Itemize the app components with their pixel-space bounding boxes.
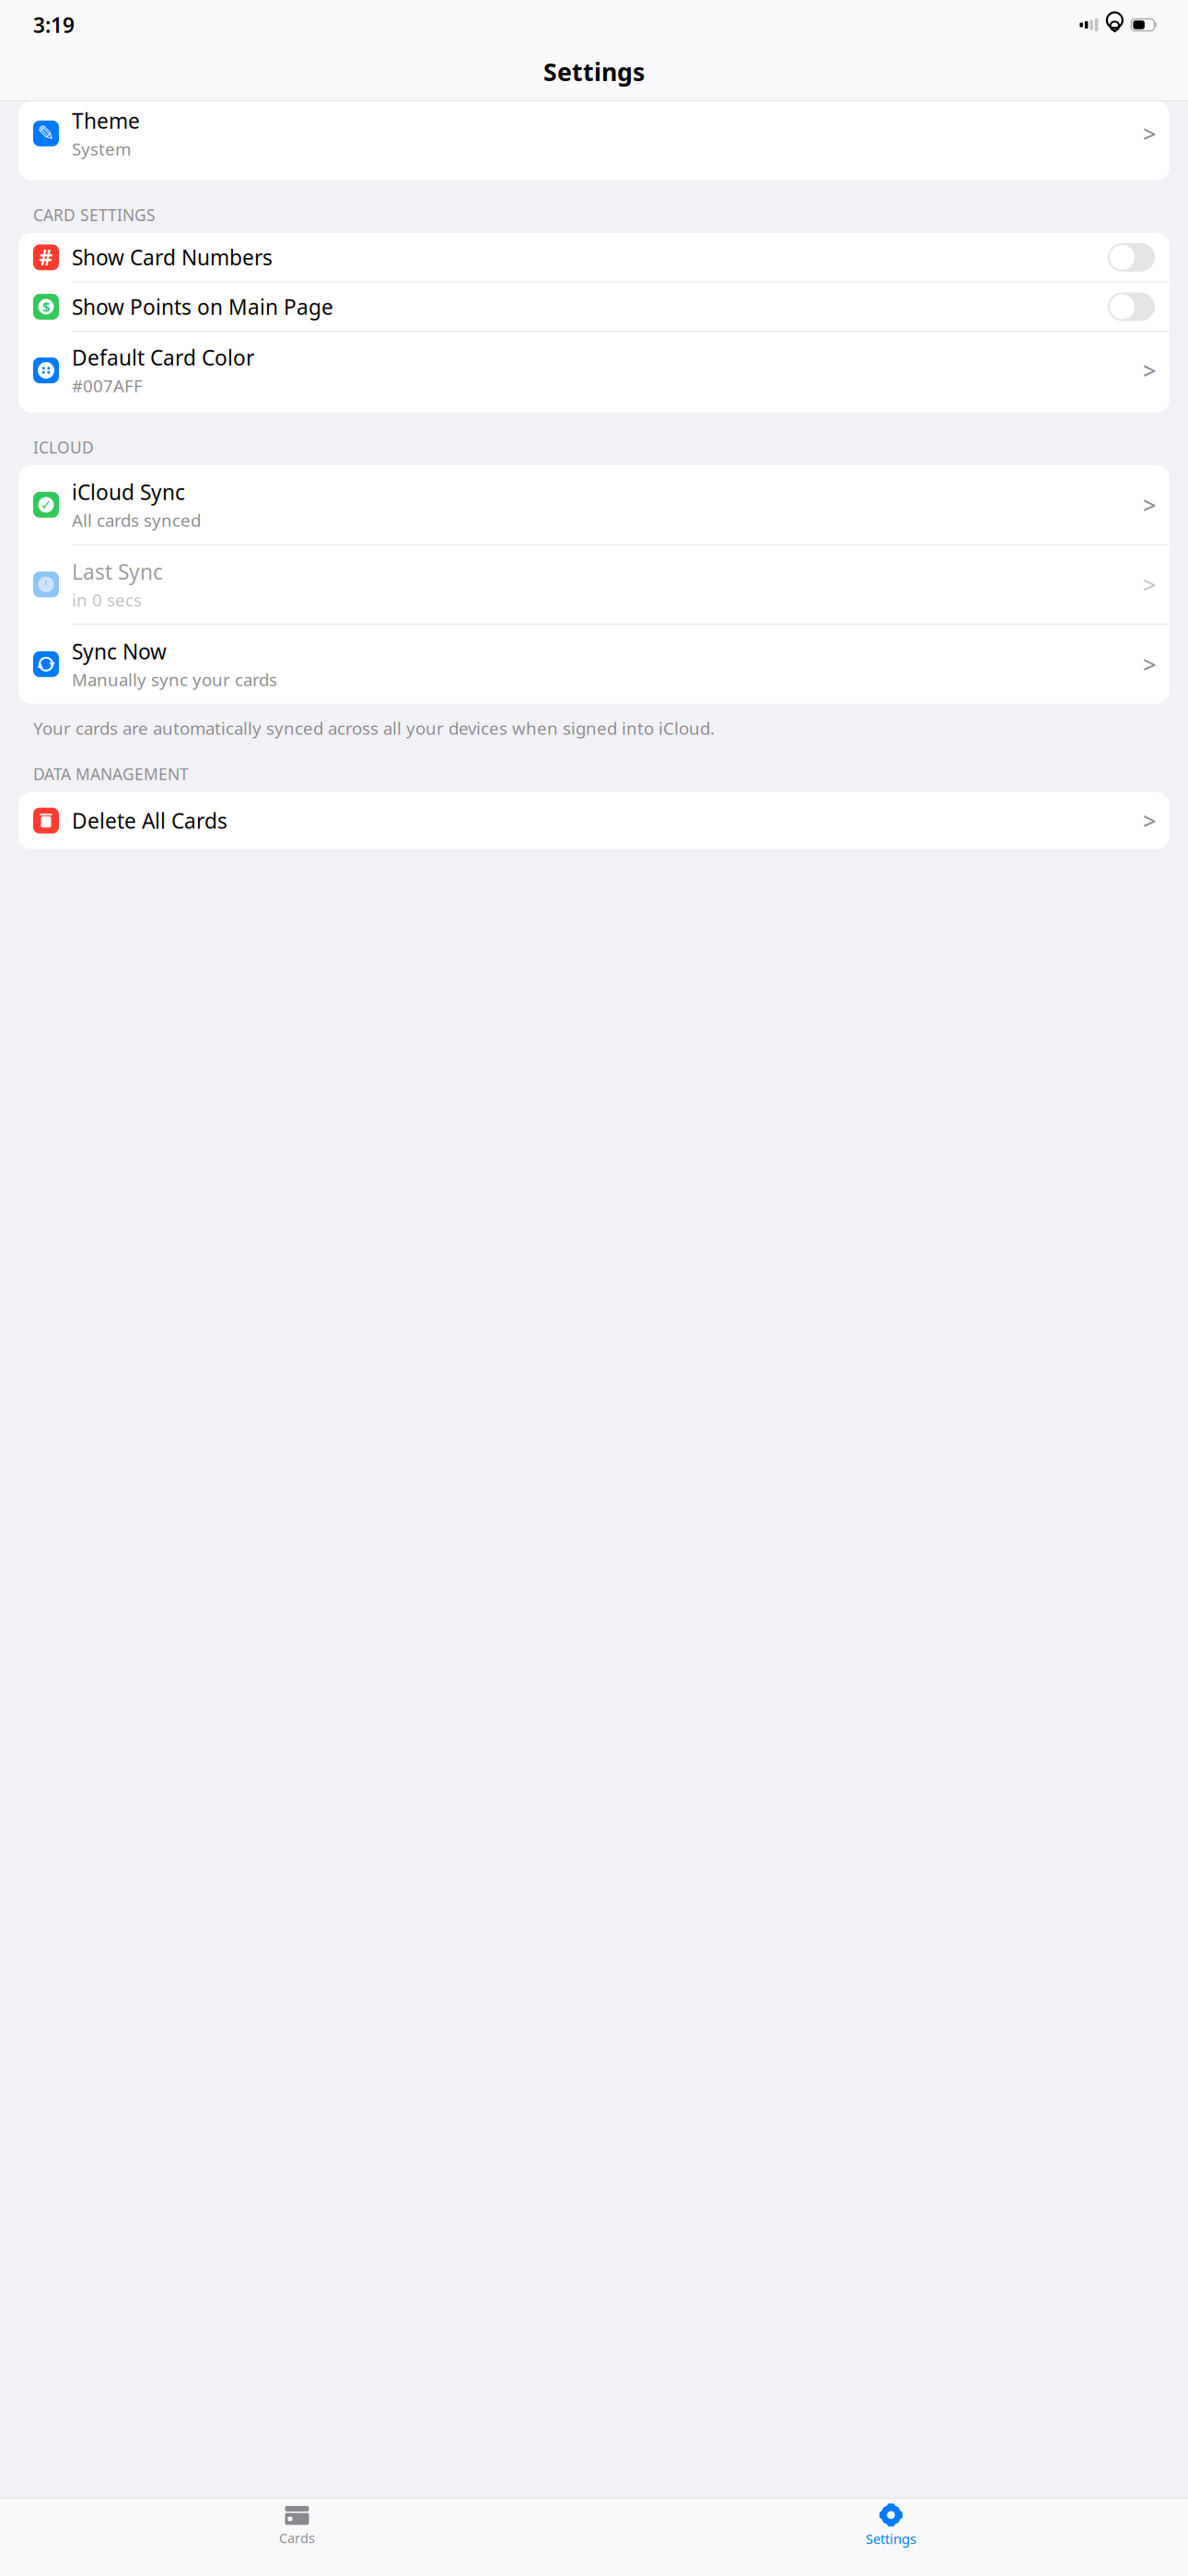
staticText: CARD SETTINGS <box>33 204 156 226</box>
staticText: in 0 secs <box>72 588 142 611</box>
staticText: Cards <box>279 2529 315 2547</box>
staticText: All cards synced <box>72 509 201 531</box>
staticText: Sync Now <box>72 637 167 665</box>
staticText: #007AFF <box>72 374 143 397</box>
staticText: ▴ <box>37 658 43 670</box>
staticText: > <box>1143 569 1156 600</box>
button[interactable]: Cards <box>0 2498 594 2547</box>
staticText: ✎ <box>37 122 55 145</box>
staticText: Delete All Cards <box>72 807 227 834</box>
staticText: Theme <box>72 107 140 135</box>
staticText: $ <box>42 298 50 316</box>
staticText: Show Points on Main Page <box>72 293 333 321</box>
staticText: Settings <box>866 2530 916 2548</box>
button[interactable]: Delete All Cards <box>18 792 1170 849</box>
staticText: ✓ <box>41 497 52 512</box>
staticText: > <box>1143 649 1156 680</box>
button[interactable]: # <box>18 233 1170 282</box>
button[interactable]: Settings <box>594 2497 1188 2548</box>
button[interactable]: Last Sync <box>18 545 1170 624</box>
staticText: > <box>1143 489 1156 520</box>
staticText: System <box>72 137 131 160</box>
staticText: ▾ <box>49 658 55 670</box>
staticText: Last Sync <box>72 558 163 585</box>
staticText: > <box>1143 355 1156 386</box>
staticText: iCloud Sync <box>72 478 185 506</box>
staticText: Settings <box>543 55 645 88</box>
button[interactable]: ✓ <box>18 465 1170 544</box>
button[interactable]: ✎ <box>18 101 1170 180</box>
button[interactable]: $ <box>18 282 1170 331</box>
staticText: Manually sync your cards <box>72 668 277 691</box>
staticText: ICLOUD <box>33 437 94 458</box>
staticText: Show Card Numbers <box>72 244 273 271</box>
staticText: 3:19 <box>33 11 75 39</box>
button[interactable]: Default Card Color <box>18 332 1170 413</box>
staticText: # <box>39 244 53 271</box>
button[interactable]: ▴ <box>18 625 1170 704</box>
staticText: DATA MANAGEMENT <box>33 763 189 785</box>
staticText: Your cards are automatically synced acro… <box>33 717 715 739</box>
staticText: Default Card Color <box>72 344 254 371</box>
staticText: > <box>1143 118 1156 149</box>
staticText: > <box>1143 805 1156 836</box>
